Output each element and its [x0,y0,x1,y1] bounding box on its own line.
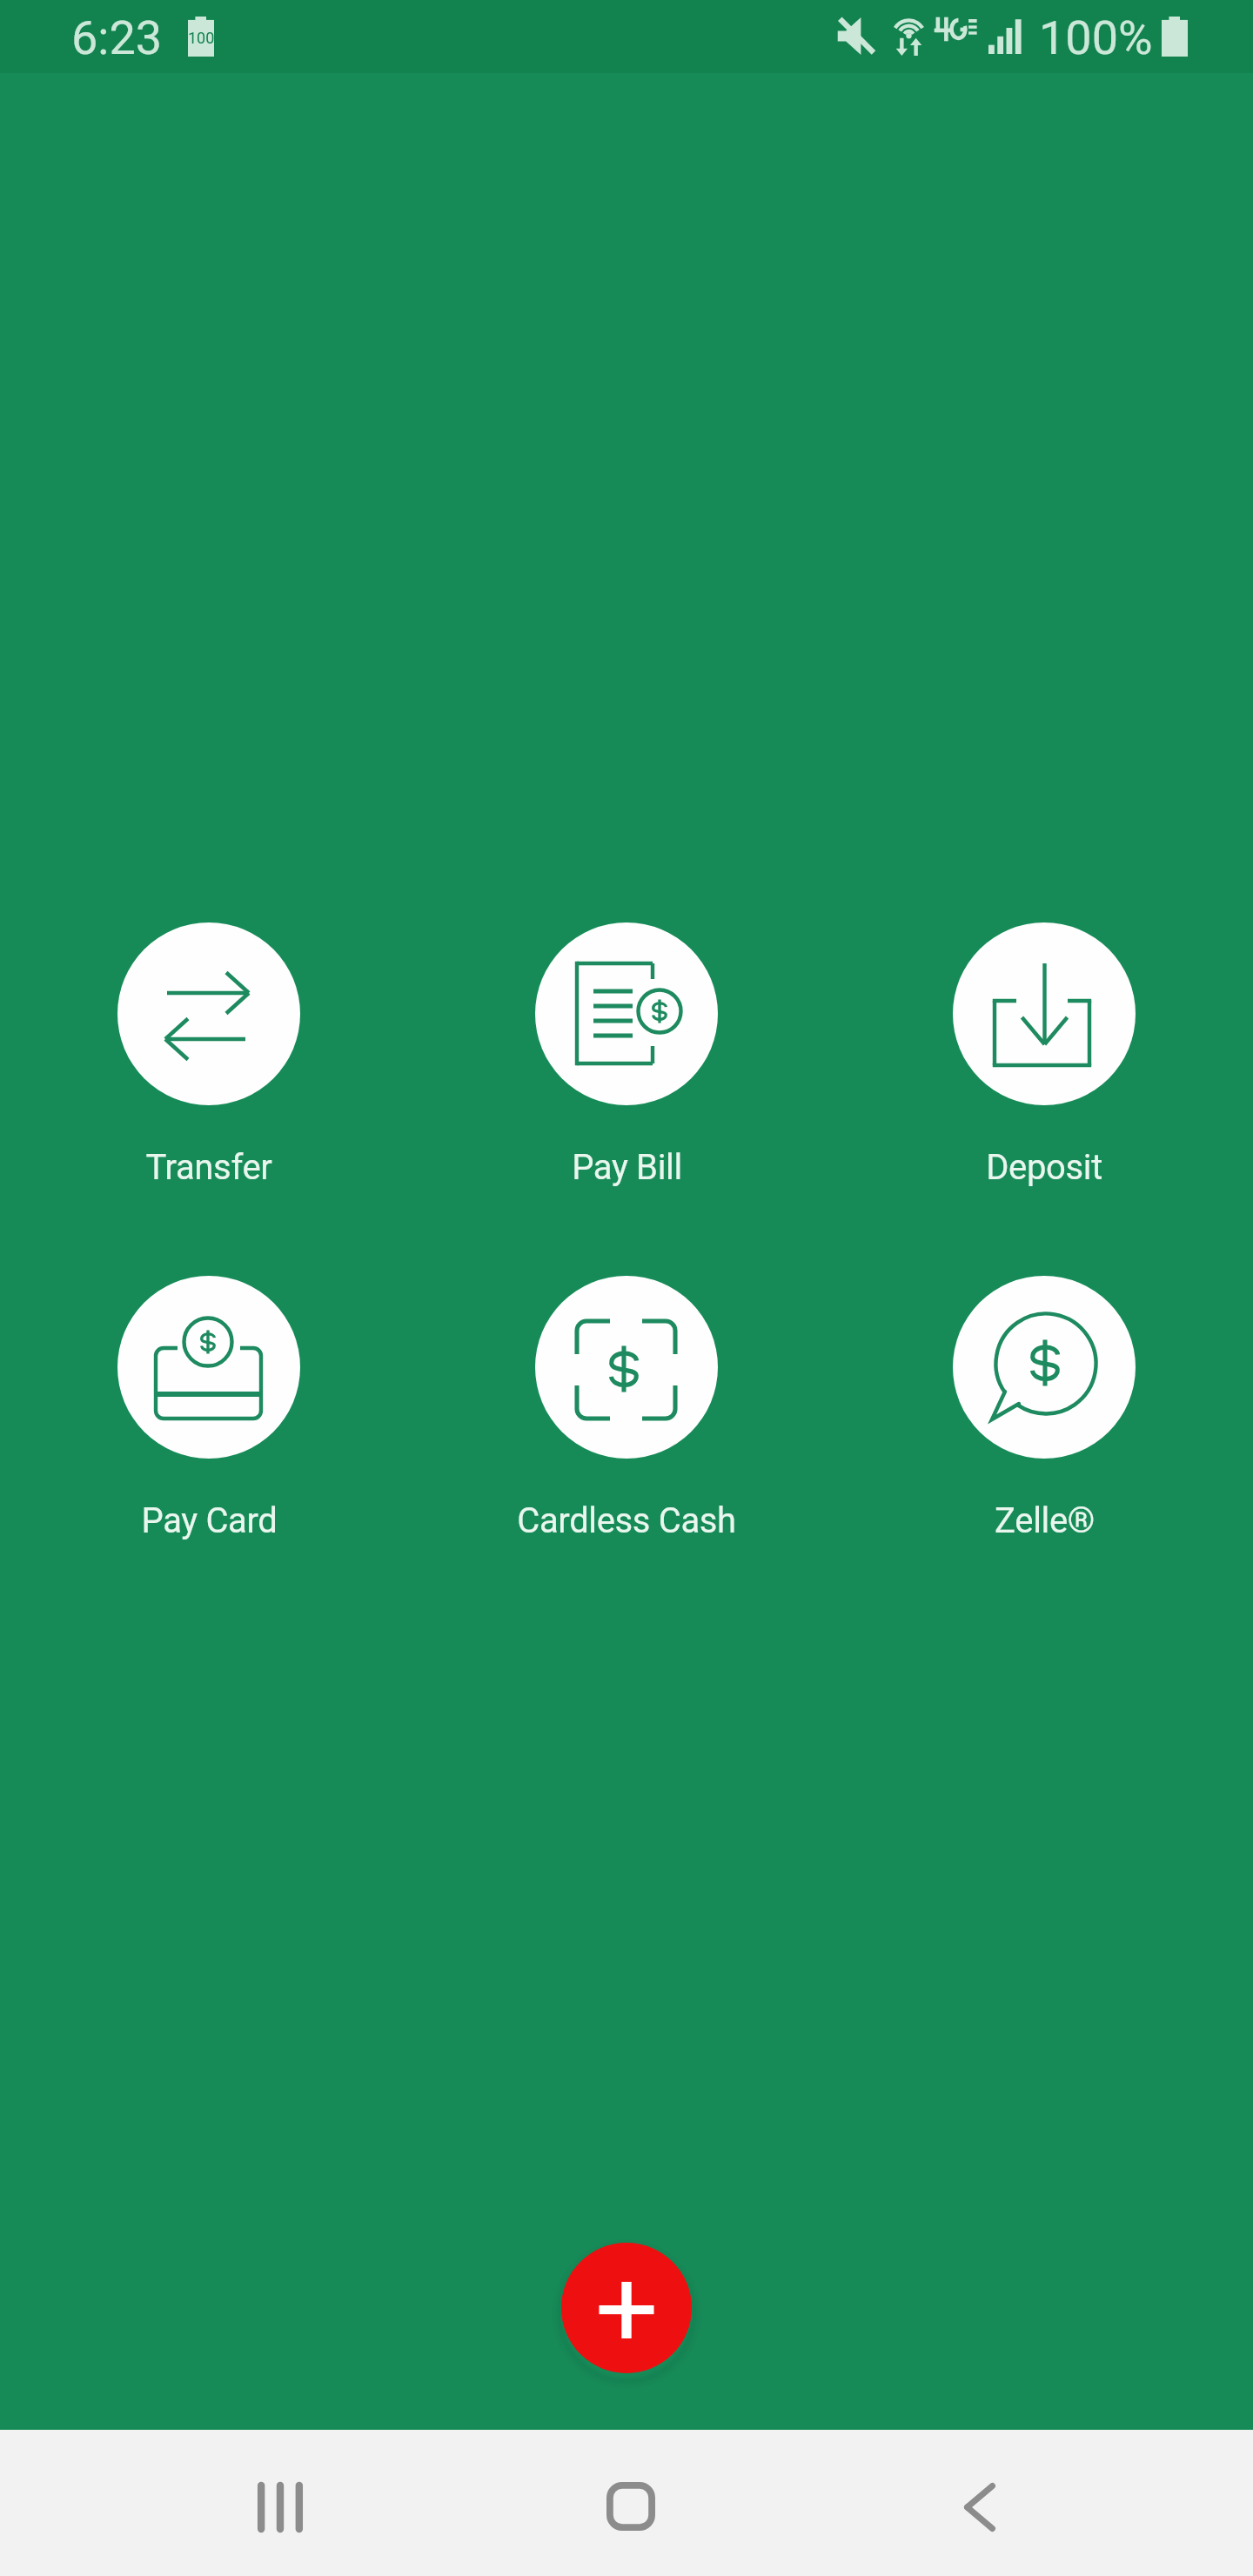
staticText: Deposit [986,1147,1102,1188]
staticText: 100 [188,29,214,47]
button[interactable]: Add [561,2243,692,2373]
button[interactable]: Home [561,2451,700,2562]
button[interactable]: Pay Bill [418,922,835,1188]
staticText: Pay Card [141,1500,278,1541]
staticText: 100% [1039,10,1153,65]
staticText: Cardless Cash [517,1500,736,1541]
staticText: Transfer [145,1147,272,1188]
staticText: Pay Bill [572,1147,682,1188]
button[interactable]: Zelle [835,1276,1253,1541]
button[interactable]: Cardless Cash [418,1276,835,1541]
button[interactable]: Pay Card [0,1276,418,1541]
staticText: Zelle® [995,1500,1095,1541]
staticText: 6:23 [71,10,163,65]
button[interactable]: Recents [211,2452,350,2563]
button[interactable]: Back [910,2452,1049,2563]
button[interactable]: Transfer [0,922,418,1188]
button[interactable]: Deposit [835,922,1253,1188]
